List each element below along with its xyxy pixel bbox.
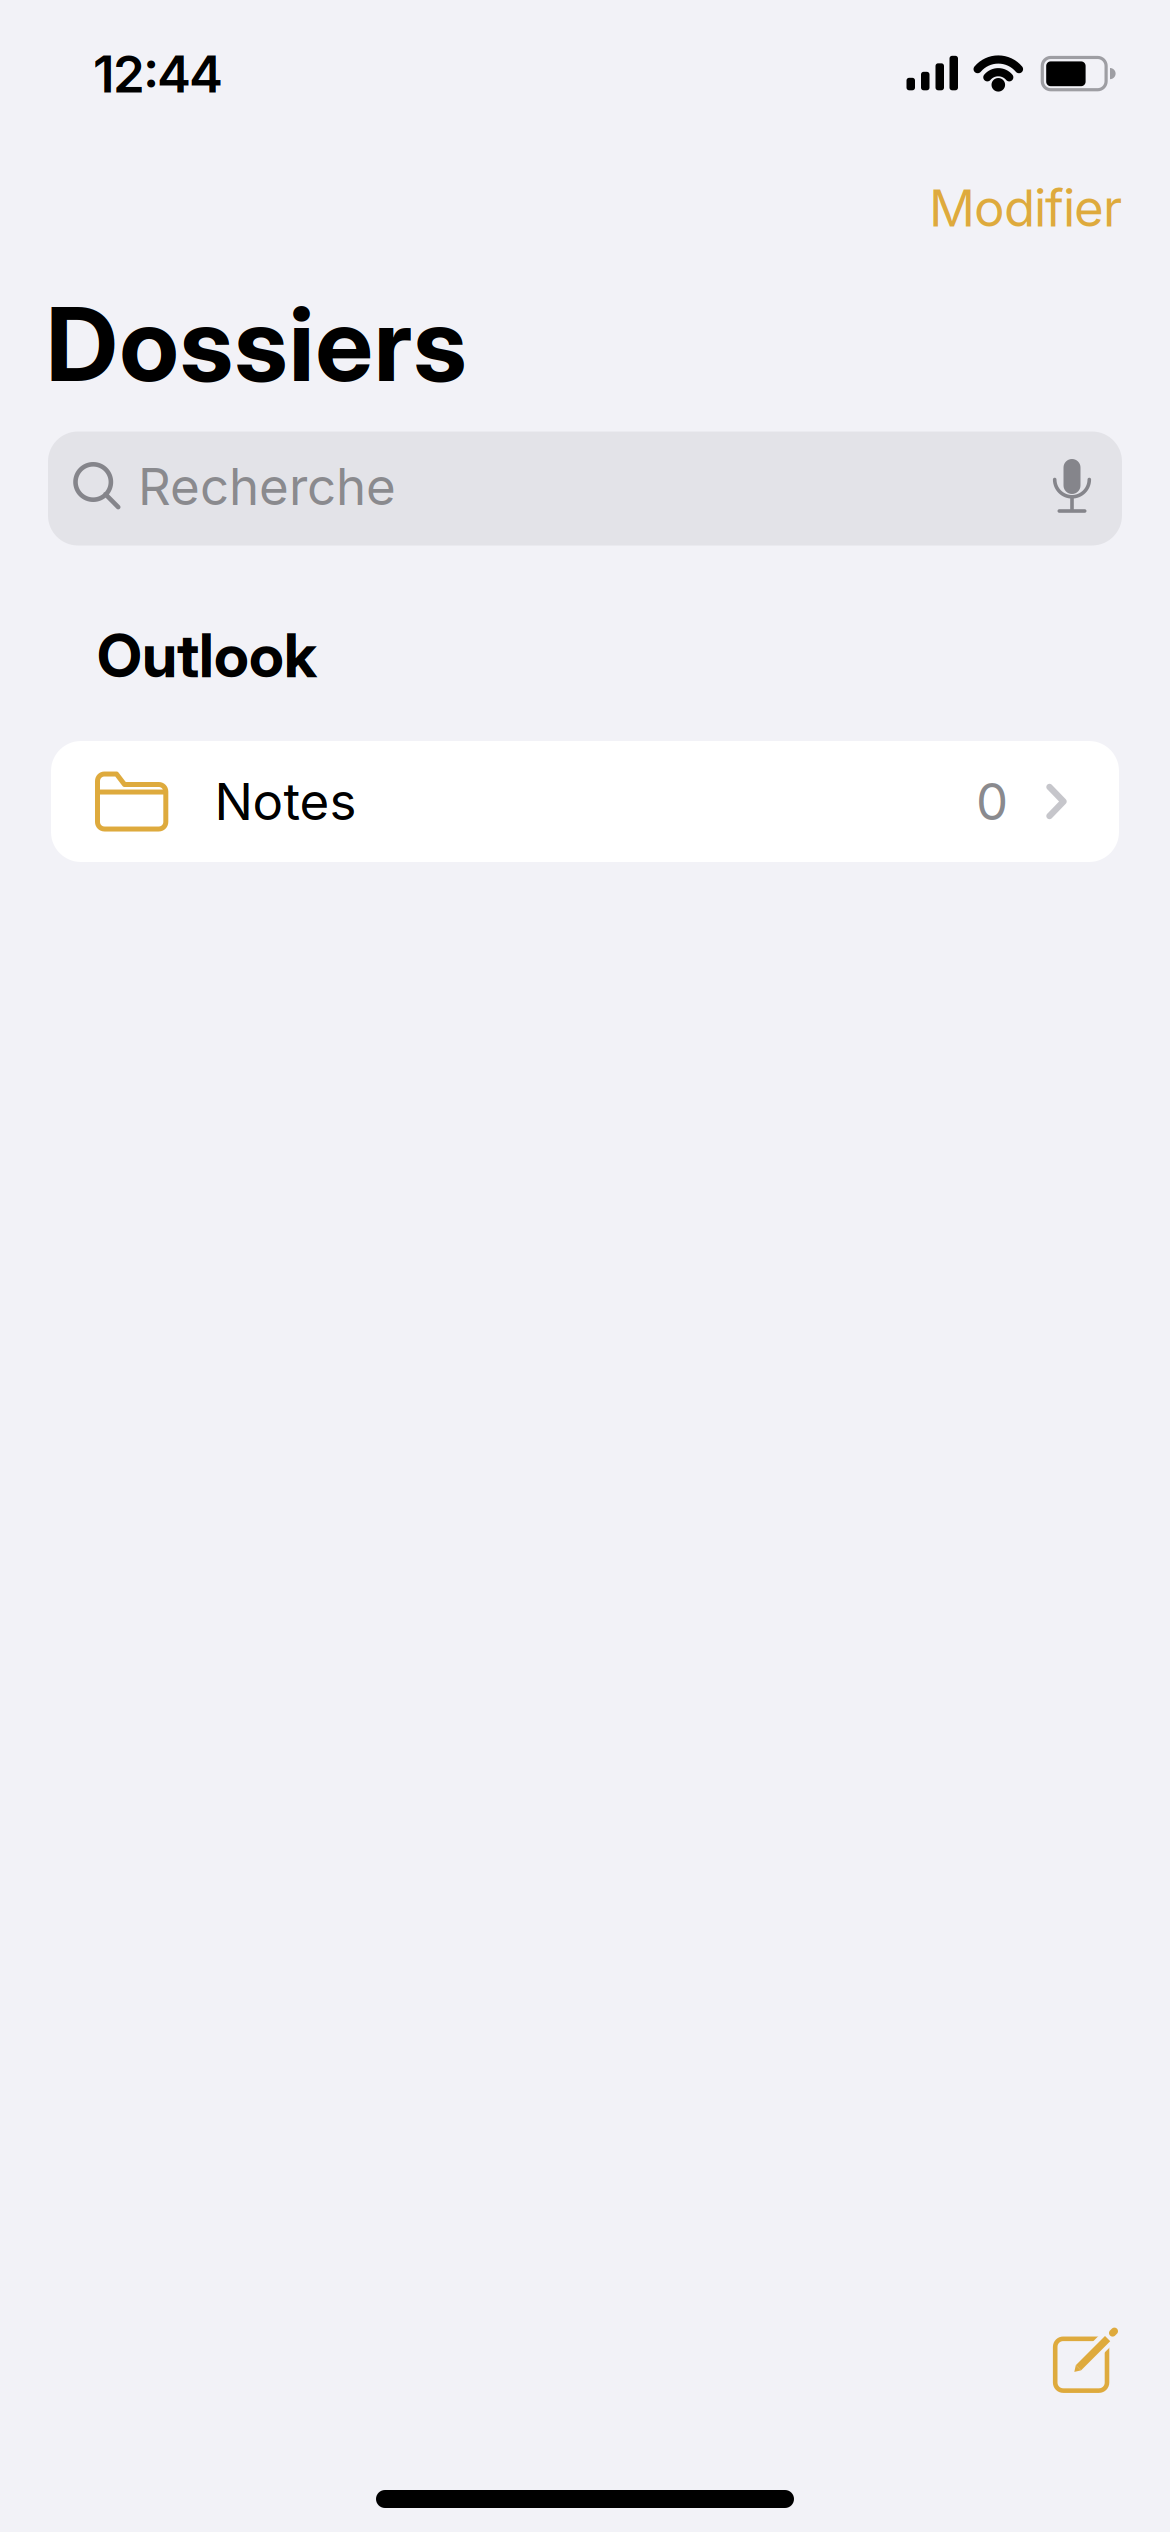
staticText: Modifier bbox=[929, 177, 1122, 239]
button[interactable]: Modifier bbox=[892, 170, 1122, 246]
button[interactable]: Nouvelle note bbox=[1049, 2325, 1121, 2397]
staticText: Recherche bbox=[138, 456, 396, 517]
staticText: 12:44 bbox=[93, 43, 223, 105]
staticText: 0 bbox=[976, 771, 1008, 832]
button[interactable]: Recherche bbox=[48, 431, 1122, 545]
staticText: Notes bbox=[214, 771, 356, 832]
staticText: Outlook bbox=[97, 619, 317, 692]
staticText: Dossiers bbox=[46, 282, 466, 406]
button[interactable]: Dictation bbox=[1052, 460, 1092, 516]
button[interactable]: Notes bbox=[51, 741, 1119, 862]
